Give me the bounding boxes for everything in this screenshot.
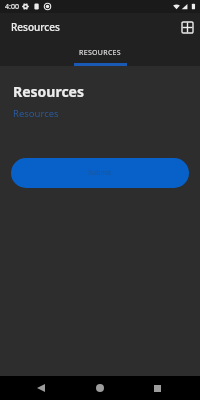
button[interactable]: Grid view [179, 19, 195, 35]
staticText: 4:00 [5, 2, 19, 12]
staticText: Resources [11, 20, 60, 34]
button[interactable]: Back [31, 378, 51, 398]
button[interactable]: Recents [147, 378, 167, 398]
staticText: Submit [88, 168, 112, 178]
staticText: RESOURCES [79, 48, 121, 58]
button[interactable]: Home [90, 378, 110, 398]
button[interactable]: Submit [11, 158, 189, 188]
button[interactable]: Resources [13, 107, 59, 120]
button[interactable]: RESOURCES [79, 48, 121, 58]
staticText: Resources [13, 82, 85, 101]
